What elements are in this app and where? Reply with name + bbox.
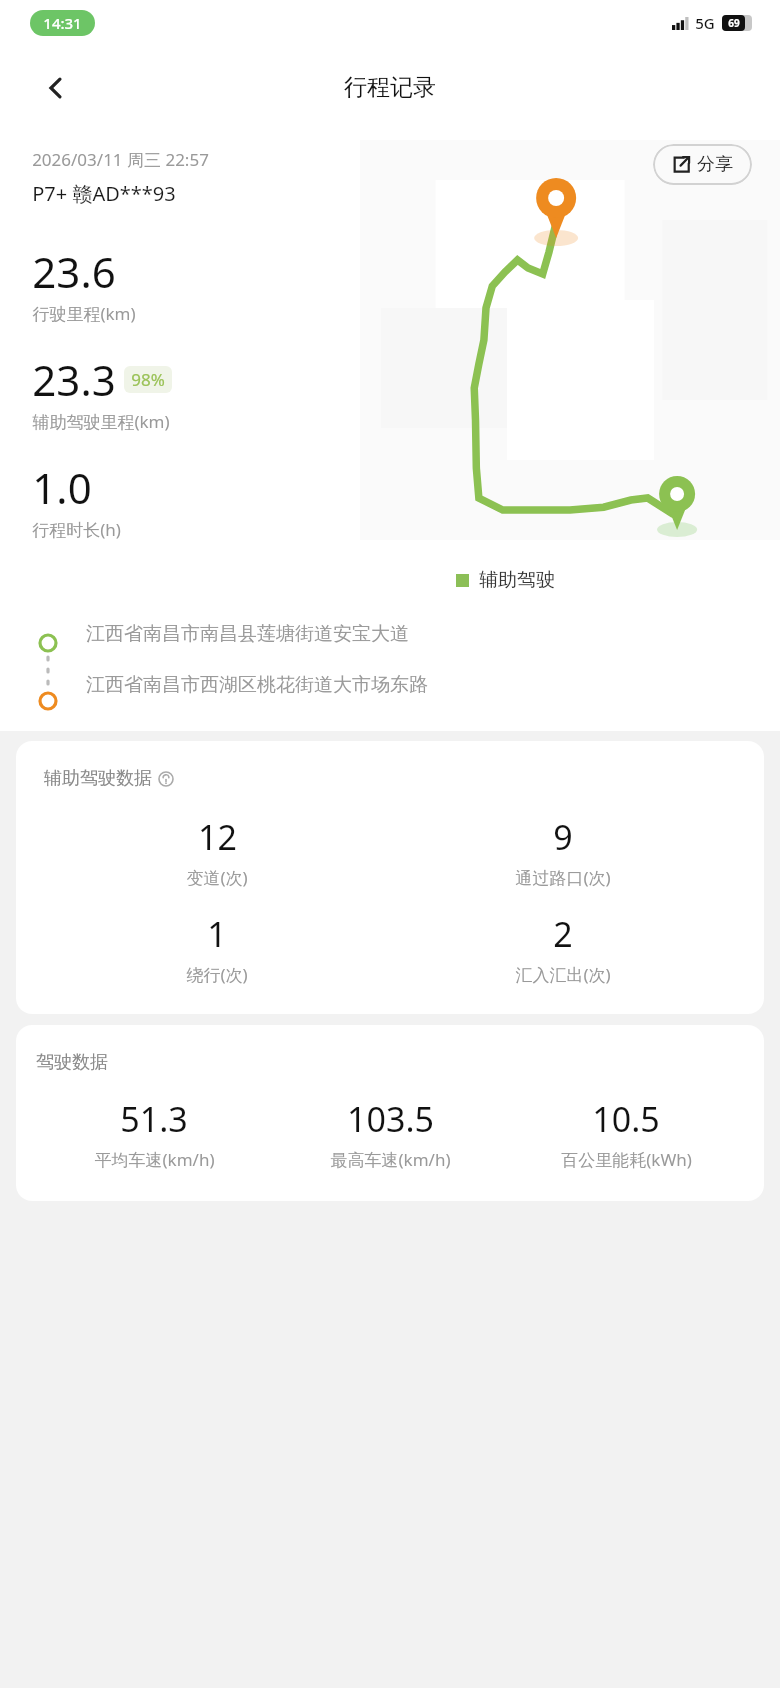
staticText: 最高车速(km/h) xyxy=(330,1148,451,1171)
staticText: 12 xyxy=(198,814,237,860)
staticText: P7+ 赣AD***93 xyxy=(32,180,176,207)
staticText: 江西省南昌市南昌县莲塘街道安宝大道 xyxy=(86,622,409,646)
staticText: 平均车速(km/h) xyxy=(94,1148,215,1171)
button[interactable]: 驾驶数据 xyxy=(16,1025,764,1201)
staticText: 江西省南昌市西湖区桃花街道大市场东路 xyxy=(86,673,428,697)
staticText: 通过路口(次) xyxy=(515,866,611,889)
staticText: 行程记录 xyxy=(344,73,436,102)
staticText: 23.6 xyxy=(32,243,116,300)
staticText: 行程时长(h) xyxy=(32,518,121,541)
staticText: 辅助驾驶数据 xyxy=(44,767,152,790)
staticText: 14:31 xyxy=(43,13,82,33)
button[interactable]: 返回 xyxy=(34,66,78,110)
staticText: 5G xyxy=(695,13,715,33)
staticText: 变道(次) xyxy=(186,866,248,889)
staticText: 驾驶数据 xyxy=(36,1051,108,1074)
button[interactable]: 分享 xyxy=(653,144,752,185)
staticText: 分享 xyxy=(697,153,733,176)
staticText: 103.5 xyxy=(347,1096,434,1142)
staticText: 辅助驾驶里程(km) xyxy=(32,410,170,433)
staticText: 69 xyxy=(728,16,740,30)
staticText: 行驶里程(km) xyxy=(32,302,136,325)
staticText: 98% xyxy=(131,368,165,391)
staticText: 绕行(次) xyxy=(186,963,248,986)
staticText: 9 xyxy=(553,814,573,860)
staticText: 2026/03/11 周三 22:57 xyxy=(32,148,209,171)
staticText: 2 xyxy=(553,911,573,957)
staticText: 百公里能耗(kWh) xyxy=(561,1148,692,1171)
staticText: 1 xyxy=(207,911,227,957)
staticText: 汇入汇出(次) xyxy=(515,963,611,986)
staticText: 23.3 xyxy=(32,351,116,408)
staticText: 辅助驾驶 xyxy=(479,568,555,592)
button[interactable]: 辅助驾驶数据 xyxy=(16,741,764,1014)
staticText: 51.3 xyxy=(120,1096,188,1142)
staticText: 10.5 xyxy=(592,1096,660,1142)
staticText: 1.0 xyxy=(32,459,92,516)
